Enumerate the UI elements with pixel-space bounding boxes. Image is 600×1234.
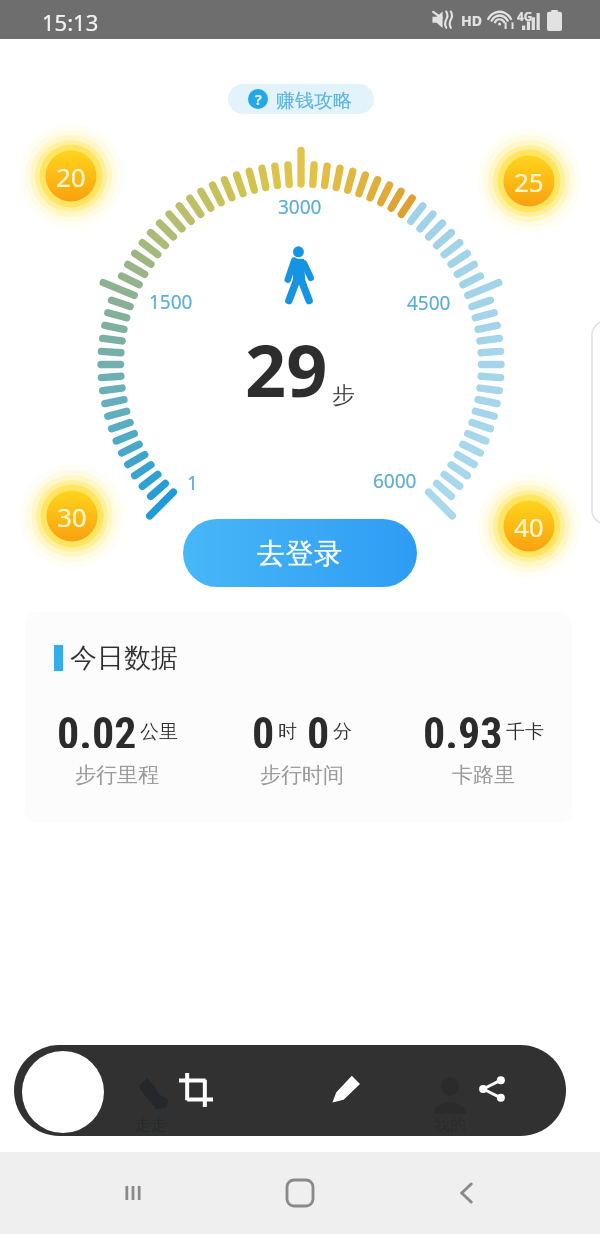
staticText: 4G — [517, 8, 533, 24]
button[interactable]: Home — [280, 1173, 320, 1213]
staticText: 20 — [56, 159, 86, 194]
button[interactable]: Coin 20 — [13, 118, 129, 234]
staticText: 0 — [307, 708, 330, 748]
staticText: 赚钱攻略 — [276, 89, 352, 113]
staticText: 15:13 — [42, 7, 99, 37]
button[interactable]: Coin 25 — [471, 123, 587, 239]
staticText: ? — [255, 90, 262, 109]
staticText: 25 — [514, 164, 544, 199]
staticText: 时 — [278, 720, 297, 744]
staticText: 29 — [245, 320, 328, 418]
button[interactable]: Share — [469, 1066, 515, 1112]
button[interactable]: Crop — [173, 1067, 219, 1113]
button[interactable]: Coin 30 — [14, 458, 130, 574]
staticText: 1500 — [149, 289, 193, 315]
button[interactable]: Back — [447, 1173, 487, 1213]
staticText: 分 — [333, 720, 352, 744]
button[interactable]: ? — [228, 84, 374, 114]
staticText: HD — [461, 11, 482, 30]
button[interactable]: 走走 — [116, 1074, 186, 1135]
button[interactable]: Recents — [113, 1173, 153, 1213]
button[interactable]: Coin 40 — [471, 468, 587, 584]
other: Walking — [285, 246, 313, 304]
button[interactable]: Draw — [322, 1067, 368, 1113]
staticText: 走走 — [135, 1115, 167, 1135]
staticText: 4500 — [407, 290, 451, 316]
staticText: 30 — [57, 499, 87, 534]
staticText: 0.93 — [423, 708, 503, 748]
staticText: 千卡 — [506, 720, 544, 744]
button[interactable]: 我的 — [415, 1076, 485, 1135]
staticText: 0.02 — [57, 708, 137, 748]
staticText: 40 — [514, 509, 544, 544]
button[interactable]: 去登录 — [183, 519, 417, 587]
staticText: 去登录 — [257, 536, 343, 571]
staticText: 6000 — [373, 468, 417, 494]
staticText: 公里 — [140, 720, 178, 744]
staticText: 0 — [252, 708, 275, 748]
staticText: 3000 — [278, 194, 322, 220]
button[interactable]: Screenshot preview — [22, 1051, 104, 1133]
staticText: 今日数据 — [70, 641, 178, 675]
staticText: 卡路里 — [452, 762, 515, 788]
staticText: 1 — [187, 470, 198, 496]
staticText: 步 — [332, 381, 355, 410]
staticText: 步行时间 — [260, 762, 344, 788]
staticText: 步行里程 — [75, 762, 159, 788]
